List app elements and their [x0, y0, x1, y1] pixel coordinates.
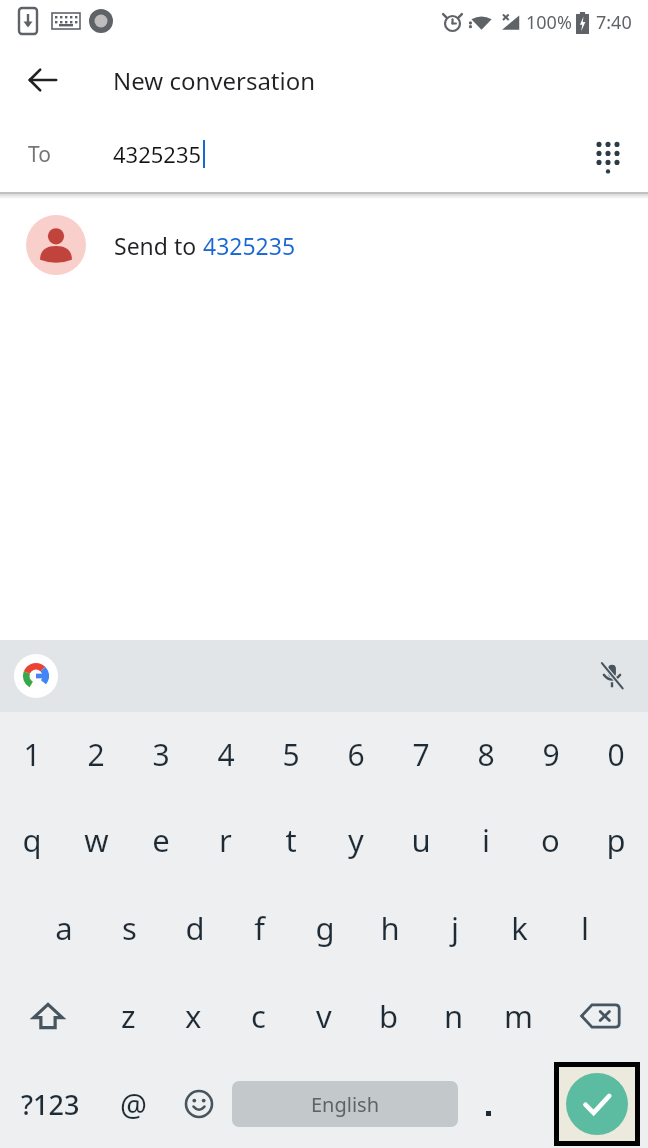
button[interactable]: f: [227, 884, 292, 972]
button[interactable]: Dialpad: [580, 126, 636, 182]
button[interactable]: 1: [0, 712, 64, 796]
button[interactable]: 9: [518, 712, 583, 796]
button[interactable]: English: [232, 1081, 458, 1127]
button[interactable]: Send: [559, 1067, 635, 1141]
staticText: c: [251, 995, 266, 1037]
button[interactable]: b: [356, 972, 421, 1060]
staticText: j: [451, 907, 459, 949]
staticText: New conversation: [113, 64, 316, 97]
button[interactable]: k: [487, 884, 552, 972]
button[interactable]: Backspace: [551, 972, 648, 1060]
staticText: 7: [412, 734, 430, 775]
button[interactable]: w: [64, 796, 128, 884]
button[interactable]: c: [226, 972, 291, 1060]
staticText: To: [28, 140, 51, 169]
button[interactable]: Send to: [0, 199, 648, 291]
staticText: d: [185, 907, 205, 949]
button[interactable]: [458, 1060, 518, 1148]
button[interactable]: 3: [128, 712, 193, 796]
button[interactable]: r: [193, 796, 258, 884]
button[interactable]: 5: [258, 712, 323, 796]
button[interactable]: Google: [14, 654, 58, 698]
staticText: u: [411, 819, 431, 861]
button[interactable]: x: [161, 972, 226, 1060]
staticText: h: [380, 907, 400, 949]
button[interactable]: y: [323, 796, 388, 884]
staticText: English: [311, 1091, 380, 1118]
button[interactable]: i: [453, 796, 518, 884]
button[interactable]: Navigate up: [14, 51, 72, 109]
staticText: i: [482, 819, 490, 861]
staticText: 5: [282, 734, 300, 775]
staticText: 4325235: [113, 139, 202, 169]
button[interactable]: 7: [388, 712, 453, 796]
staticText: p: [606, 819, 626, 861]
staticText: 4325235: [203, 230, 296, 261]
button[interactable]: l: [552, 884, 617, 972]
button[interactable]: j: [422, 884, 487, 972]
button[interactable]: q: [0, 796, 64, 884]
button[interactable]: s: [97, 884, 162, 972]
staticText: b: [379, 995, 399, 1037]
staticText: ?123: [21, 1086, 80, 1123]
staticText: m: [504, 995, 533, 1037]
button[interactable]: t: [258, 796, 323, 884]
button[interactable]: 8: [453, 712, 518, 796]
staticText: k: [511, 907, 528, 949]
button[interactable]: @: [100, 1060, 166, 1148]
button[interactable]: 0: [583, 712, 648, 796]
staticText: t: [285, 819, 297, 861]
button[interactable]: p: [583, 796, 648, 884]
button[interactable]: v: [291, 972, 356, 1060]
staticText: 100%: [526, 10, 572, 35]
button[interactable]: h: [357, 884, 422, 972]
button[interactable]: 2: [64, 712, 128, 796]
staticText: z: [121, 995, 136, 1037]
staticText: w: [84, 819, 109, 861]
staticText: n: [444, 995, 464, 1037]
button[interactable]: o: [518, 796, 583, 884]
staticText: v: [316, 995, 332, 1037]
staticText: 3: [152, 734, 170, 775]
staticText: 6: [347, 734, 365, 775]
button[interactable]: Voice input off: [588, 652, 636, 700]
staticText: r: [219, 819, 232, 861]
staticText: 0: [607, 734, 625, 775]
button[interactable]: 6: [323, 712, 388, 796]
button[interactable]: ?123: [0, 1060, 100, 1148]
button[interactable]: a: [31, 884, 97, 972]
button[interactable]: g: [292, 884, 357, 972]
staticText: o: [541, 819, 560, 861]
staticText: f: [254, 907, 265, 949]
staticText: y: [348, 819, 364, 861]
staticText: Send to: [114, 230, 203, 261]
staticText: 4: [217, 734, 235, 775]
button[interactable]: e: [128, 796, 193, 884]
button[interactable]: d: [162, 884, 227, 972]
staticText: q: [22, 819, 42, 861]
button[interactable]: 4: [193, 712, 258, 796]
staticText: 7:40: [596, 10, 632, 35]
staticText: l: [581, 907, 589, 949]
staticText: g: [315, 907, 335, 949]
staticText: s: [122, 907, 137, 949]
button[interactable]: n: [421, 972, 486, 1060]
staticText: 1: [23, 734, 41, 775]
button[interactable]: z: [96, 972, 161, 1060]
button[interactable]: Emoji: [166, 1060, 232, 1148]
staticText: 2: [87, 734, 105, 775]
button[interactable]: To: [0, 116, 648, 192]
button[interactable]: u: [388, 796, 453, 884]
staticText: 8: [477, 734, 495, 775]
staticText: 9: [542, 734, 560, 775]
button[interactable]: Shift: [0, 972, 96, 1060]
staticText: e: [152, 819, 170, 861]
staticText: x: [185, 995, 202, 1037]
staticText: a: [55, 907, 73, 949]
staticText: @: [120, 1084, 147, 1125]
button[interactable]: m: [486, 972, 551, 1060]
